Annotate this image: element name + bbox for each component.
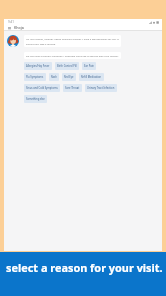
staticText: Rash [51,75,57,79]
button[interactable]: Refill Medication [79,73,104,81]
staticText: Khoja [14,25,24,30]
staticText: Do you have a primary condition / sympto… [26,54,119,57]
staticText: 9:41 [8,20,14,24]
button[interactable]: Red Eye [62,73,76,81]
button[interactable]: Something else [24,95,47,103]
staticText: Sinus and Cold Symptoms [26,86,58,90]
staticText: Sore Throat [65,86,80,90]
staticText: Flu Symptoms [26,75,44,79]
staticText: Ear Pain [84,64,94,68]
staticText: select a reason for your visit. [6,260,163,275]
button[interactable]: Ear Pain [82,62,96,70]
staticText: Something else [26,97,45,101]
button[interactable]: Urinary Tract Infection [85,84,117,92]
button[interactable]: Open navigation menu [7,25,12,30]
staticText: Allergies/Hay Fever [26,64,50,68]
staticText: Urinary Tract Infection [87,86,115,90]
staticText: Hi! I am Sophie, MEDVET health assistant… [26,37,119,45]
staticText: Birth Control Pill [57,64,77,68]
staticText: Red Eye [64,75,74,79]
button[interactable]: Birth Control Pill [55,62,79,70]
button[interactable]: Rash [49,73,59,81]
button[interactable]: Allergies/Hay Fever [24,62,52,70]
button[interactable]: Sore Throat [63,84,82,92]
button[interactable]: Flu Symptoms [24,73,46,81]
staticText: Refill Medication [81,75,102,79]
button[interactable]: Sinus and Cold Symptoms [24,84,60,92]
